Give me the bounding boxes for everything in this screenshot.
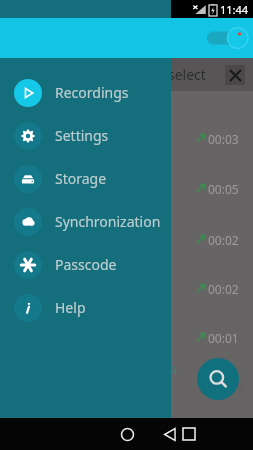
staticText: Recordings [55,83,129,102]
staticText: Help [55,298,86,317]
button[interactable]: Help [0,286,171,329]
staticText: Settings [55,126,109,145]
staticText: 00:02 [208,281,239,295]
button[interactable]: Settings [0,114,171,157]
button[interactable]: 00:01 [196,330,239,344]
button[interactable]: Recordings [0,71,171,114]
button[interactable]: Close [225,65,245,85]
button[interactable]: 00:05 [196,181,239,195]
staticText: 00:05 [208,181,239,195]
button[interactable]: Synchronization [0,200,171,243]
staticText: 11:44 [220,2,249,17]
button[interactable]: Toggle [207,27,249,49]
staticText: ya [163,360,177,378]
staticText: 00:01 [208,330,239,344]
button[interactable]: Storage [0,157,171,200]
staticText: Synchronization [55,212,161,231]
button[interactable]: Home [107,418,147,450]
button[interactable]: Recent apps [169,418,209,450]
button[interactable]: Passcode [0,243,171,286]
button[interactable]: Back [44,418,253,450]
button[interactable]: 00:02 [196,281,239,295]
button[interactable]: Search [197,358,239,400]
staticText: 00:03 [208,131,239,145]
button[interactable]: 00:03 [196,131,239,145]
staticText: select [168,65,206,84]
staticText: Storage [55,169,107,188]
button[interactable]: 00:02 [196,232,239,246]
staticText: 00:02 [208,232,239,246]
staticText: Passcode [55,255,117,274]
